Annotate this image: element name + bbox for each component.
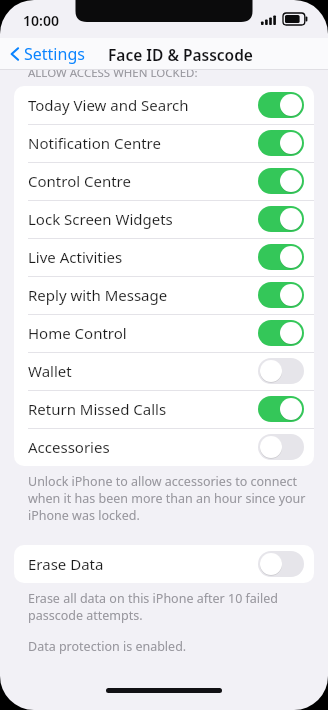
button[interactable]: Notification Centre toggle: [258, 130, 304, 156]
button[interactable]: Wallet: [14, 352, 314, 390]
staticText: ALLOW ACCESS WHEN LOCKED:: [28, 70, 198, 78]
button[interactable]: Wallet toggle: [258, 358, 304, 384]
button[interactable]: Today View and Search toggle: [258, 92, 304, 118]
staticText: Erase all data on this iPhone after 10 f…: [28, 590, 279, 624]
staticText: Unlock iPhone to allow accessories to co…: [28, 473, 306, 524]
button[interactable]: Erase Data toggle: [258, 551, 304, 577]
button[interactable]: Return Missed Calls: [14, 390, 314, 428]
button[interactable]: Reply with Message toggle: [258, 282, 304, 308]
button[interactable]: Live Activities toggle: [258, 244, 304, 270]
staticText: Reply with Message: [28, 285, 168, 305]
button[interactable]: Lock Screen Widgets toggle: [258, 206, 304, 232]
staticText: Home Control: [28, 323, 127, 343]
staticText: Lock Screen Widgets: [28, 209, 173, 229]
staticText: Notification Centre: [28, 133, 161, 153]
staticText: Face ID & Passcode: [108, 44, 253, 65]
button[interactable]: Settings: [8, 43, 85, 65]
button[interactable]: Control Centre toggle: [258, 168, 304, 194]
staticText: Erase Data: [28, 554, 104, 574]
button[interactable]: Accessories toggle: [258, 434, 304, 460]
button[interactable]: Live Activities: [14, 238, 314, 276]
button[interactable]: Home Control toggle: [258, 320, 304, 346]
staticText: Return Missed Calls: [28, 399, 167, 419]
staticText: Live Activities: [28, 247, 123, 267]
button[interactable]: Erase Data: [14, 545, 314, 583]
staticText: 10:00: [23, 11, 59, 30]
button[interactable]: Accessories: [14, 428, 314, 466]
button[interactable]: Home Control: [14, 314, 314, 352]
staticText: Settings: [24, 43, 85, 65]
staticText: Accessories: [28, 437, 110, 457]
staticText: Control Centre: [28, 171, 131, 191]
button[interactable]: Today View and Search: [14, 86, 314, 124]
button[interactable]: Lock Screen Widgets: [14, 200, 314, 238]
button[interactable]: Control Centre: [14, 162, 314, 200]
button[interactable]: Return Missed Calls toggle: [258, 396, 304, 422]
staticText: Today View and Search: [28, 95, 189, 115]
staticText: Data protection is enabled.: [28, 638, 187, 655]
staticText: Wallet: [28, 361, 72, 381]
button[interactable]: Reply with Message: [14, 276, 314, 314]
button[interactable]: Notification Centre: [14, 124, 314, 162]
